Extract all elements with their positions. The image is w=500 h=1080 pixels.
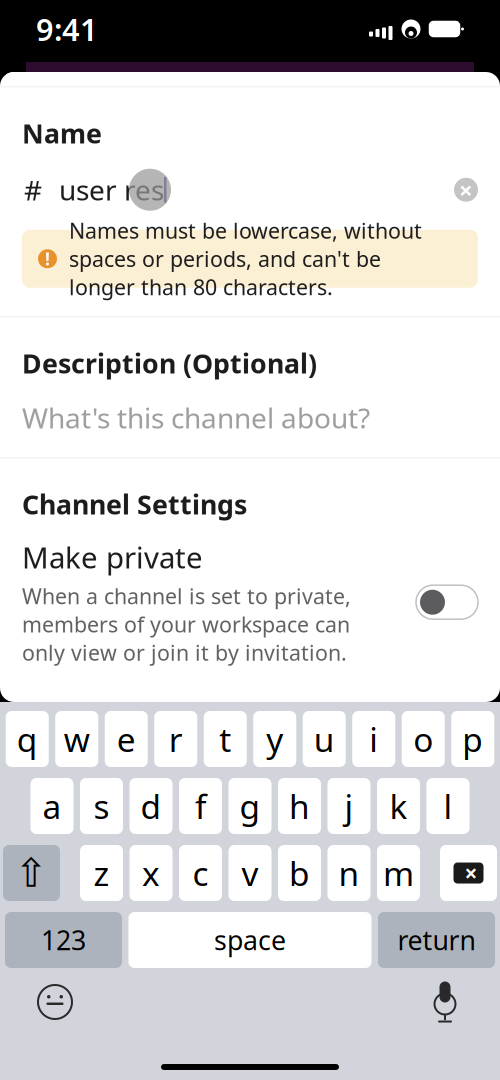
button[interactable]: 123 <box>5 912 122 968</box>
button[interactable]: i <box>352 711 395 767</box>
staticText: × <box>459 174 473 206</box>
button[interactable]: s <box>80 778 123 834</box>
button[interactable]: Delete <box>440 845 497 901</box>
staticText: c <box>192 851 208 895</box>
staticText: v <box>241 851 258 895</box>
button[interactable]: Make private <box>0 522 500 667</box>
staticText: Names must be lowercase, without spaces … <box>69 216 422 301</box>
staticText: # <box>24 171 42 208</box>
button[interactable]: Emoji <box>25 976 85 1028</box>
button[interactable]: e <box>105 711 148 767</box>
button[interactable]: t <box>204 711 247 767</box>
staticText: space <box>214 922 286 958</box>
staticText: b <box>289 851 310 895</box>
button[interactable]: b <box>278 845 321 901</box>
staticText: h <box>289 784 310 828</box>
button[interactable]: n <box>327 845 370 901</box>
button[interactable]: Back <box>6 20 68 80</box>
staticText: When a channel is set to private, member… <box>22 582 351 667</box>
button[interactable]: Create <box>365 16 494 85</box>
button[interactable]: m <box>377 845 420 901</box>
button[interactable]: a <box>30 778 73 834</box>
staticText: New Channel <box>144 29 355 72</box>
button[interactable]: return <box>378 912 495 968</box>
button[interactable]: h <box>278 778 321 834</box>
button[interactable]: v <box>228 845 271 901</box>
staticText: ⇧ <box>14 850 48 896</box>
staticText: user res <box>59 171 164 208</box>
button[interactable]: What's this channel about? <box>0 393 500 443</box>
staticText: j <box>344 784 353 828</box>
button[interactable]: g <box>228 778 271 834</box>
staticText: What's this channel about? <box>22 399 370 436</box>
staticText: x <box>142 851 160 895</box>
staticText: g <box>239 784 260 828</box>
staticText: y <box>266 717 283 761</box>
staticText: Channel Settings <box>22 486 247 522</box>
button[interactable]: Shift <box>3 845 60 901</box>
staticText: × <box>464 858 477 888</box>
staticText: a <box>42 784 61 828</box>
button[interactable]: space <box>128 912 371 968</box>
staticText: u <box>314 717 335 761</box>
staticText: Make private <box>22 538 203 577</box>
button[interactable]: l <box>426 778 469 834</box>
staticText: t <box>219 717 231 761</box>
staticText: w <box>64 717 90 761</box>
staticText: i <box>369 717 378 761</box>
staticText: p <box>462 717 483 761</box>
button[interactable]: f <box>179 778 222 834</box>
staticText: s <box>93 784 109 828</box>
button[interactable]: c <box>179 845 222 901</box>
button[interactable]: k <box>377 778 420 834</box>
staticText: r <box>169 717 183 761</box>
staticText: o <box>413 717 433 761</box>
button[interactable]: o <box>402 711 445 767</box>
button[interactable]: q <box>6 711 49 767</box>
staticText: z <box>93 851 109 895</box>
staticText: Name <box>22 115 102 151</box>
staticText: e <box>117 717 136 761</box>
staticText: ! <box>45 247 50 270</box>
staticText: return <box>397 922 475 958</box>
button[interactable]: y <box>253 711 296 767</box>
staticText: f <box>195 784 206 828</box>
button[interactable]: j <box>327 778 370 834</box>
button[interactable]: r <box>154 711 197 767</box>
staticText: n <box>338 851 359 895</box>
button[interactable]: x <box>129 845 172 901</box>
button[interactable]: u <box>303 711 346 767</box>
button[interactable]: p <box>451 711 494 767</box>
staticText: 9:41 <box>36 9 98 49</box>
staticText: q <box>17 717 38 761</box>
button[interactable]: z <box>80 845 123 901</box>
staticText: l <box>443 784 452 828</box>
staticText: m <box>383 851 414 895</box>
staticText: d <box>140 784 161 828</box>
staticText: Create <box>383 30 476 71</box>
button[interactable]: w <box>55 711 98 767</box>
staticText: 123 <box>41 922 86 958</box>
staticText: k <box>389 784 407 828</box>
button[interactable]: Dictation <box>415 976 475 1028</box>
staticText: Description (Optional) <box>22 345 317 381</box>
button[interactable]: d <box>129 778 172 834</box>
staticText: ‹ <box>28 11 46 89</box>
button[interactable]: Clear text <box>444 168 488 212</box>
